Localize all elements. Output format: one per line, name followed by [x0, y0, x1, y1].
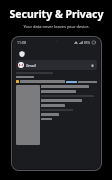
button[interactable]: Gmail [16, 60, 97, 70]
staticText: 11:08 [17, 40, 26, 45]
button[interactable]: Delete [89, 62, 95, 68]
staticText: 85% [84, 41, 91, 45]
staticText: Your data never leaves your device. [23, 24, 90, 29]
staticText: Security & Privacy [9, 7, 104, 21]
staticText: Gmail [26, 63, 36, 68]
button[interactable]: Security [17, 49, 26, 58]
